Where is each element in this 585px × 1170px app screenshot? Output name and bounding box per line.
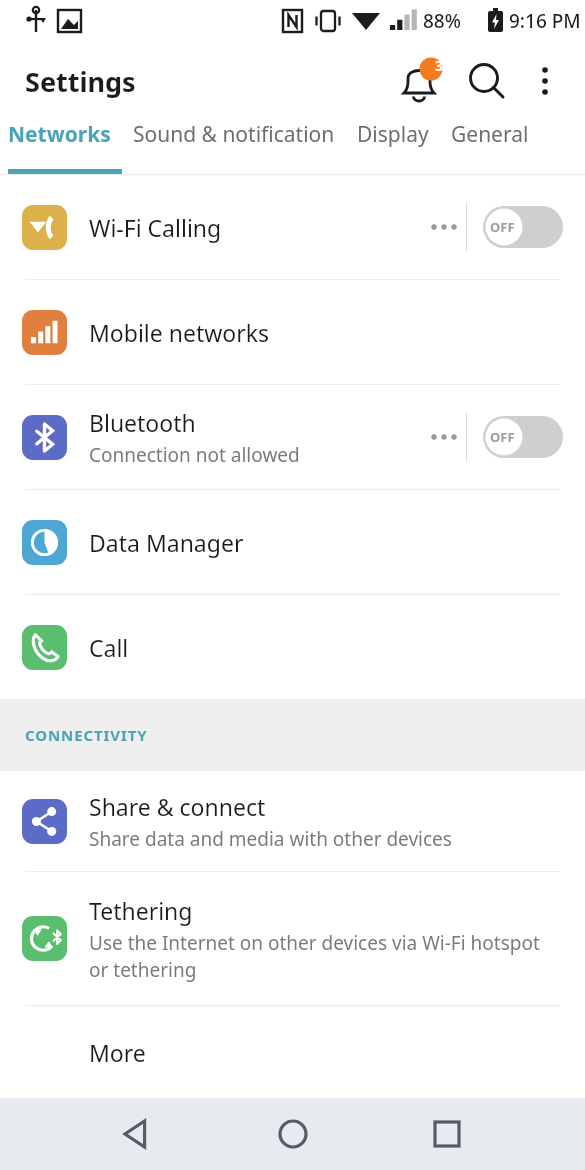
button[interactable]: More: [0, 1006, 585, 1098]
button[interactable]: General: [451, 120, 529, 149]
staticText: General: [451, 120, 529, 149]
staticText: Bluetooth: [89, 407, 196, 438]
staticText: OFF: [490, 218, 515, 236]
staticText: Mobile networks: [89, 317, 270, 348]
staticText: Connection not allowed: [89, 442, 300, 468]
staticText: Share & connect: [89, 791, 266, 822]
staticText: 3: [435, 56, 444, 75]
button[interactable]: Call: [0, 595, 585, 699]
button[interactable]: Bluetooth: [0, 385, 585, 489]
staticText: Share data and media with other devices: [89, 826, 452, 852]
staticText: CONNECTIVITY: [25, 725, 148, 745]
staticText: OFF: [490, 428, 515, 446]
button[interactable]: Wi-Fi Calling switch, off: [483, 206, 563, 248]
staticText: 9:16 PM: [509, 8, 581, 34]
button[interactable]: Mobile networks: [0, 280, 585, 384]
staticText: Call: [89, 632, 129, 663]
staticText: Wi-Fi Calling: [89, 212, 222, 243]
button[interactable]: Bluetooth switch, off: [483, 416, 563, 458]
button[interactable]: Tethering: [0, 872, 585, 1005]
button[interactable]: Share & connect: [0, 771, 585, 871]
staticText: Tethering: [89, 895, 193, 926]
button[interactable]: Recent apps: [419, 1106, 475, 1162]
staticText: More: [89, 1037, 146, 1068]
staticText: Display: [357, 120, 429, 149]
button[interactable]: Notifications, 3 new: [391, 53, 447, 109]
button[interactable]: Home: [265, 1106, 321, 1162]
button[interactable]: Back: [110, 1106, 166, 1162]
button[interactable]: Wi-Fi Calling options: [422, 205, 466, 249]
staticText: Sound & notification: [133, 120, 335, 149]
button[interactable]: Data Manager: [0, 490, 585, 594]
staticText: Use the Internet on other devices via Wi…: [89, 930, 553, 983]
button[interactable]: Search: [459, 53, 515, 109]
button[interactable]: Networks: [8, 120, 111, 149]
button[interactable]: More options: [519, 55, 571, 107]
staticText: Settings: [25, 63, 136, 100]
button[interactable]: Display: [357, 120, 429, 149]
staticText: Networks: [8, 120, 111, 149]
button[interactable]: Wi-Fi Calling: [0, 175, 585, 279]
button[interactable]: Bluetooth options: [422, 415, 466, 459]
staticText: Data Manager: [89, 527, 244, 558]
staticText: 88%: [423, 8, 461, 34]
button[interactable]: Sound & notification: [133, 120, 335, 149]
